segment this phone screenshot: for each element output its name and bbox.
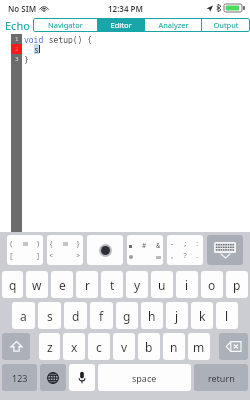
button[interactable]: ( . ) [ ] — [7, 235, 43, 265]
staticText: 3 — [15, 55, 19, 63]
button[interactable]: u — [151, 271, 173, 298]
button[interactable]: r — [76, 271, 98, 298]
button[interactable]: z — [39, 333, 60, 360]
button[interactable]: t — [101, 271, 123, 298]
staticText: Navigator — [48, 20, 83, 30]
staticText: ( — [9, 239, 14, 249]
staticText: 2 — [15, 45, 19, 53]
staticText: a — [20, 308, 27, 324]
button[interactable]: o — [201, 271, 223, 298]
staticText: > — [76, 251, 81, 261]
button[interactable]: Delete — [219, 333, 248, 360]
staticText: , — [170, 251, 175, 261]
staticText: s — [47, 308, 53, 324]
button[interactable]: m — [188, 333, 210, 360]
button[interactable]: e — [51, 271, 73, 298]
staticText: 12:34 PM — [108, 3, 143, 14]
button[interactable]: l — [216, 302, 238, 329]
button[interactable]: d — [64, 302, 87, 329]
button[interactable]: g — [116, 302, 138, 329]
staticText: space — [132, 372, 157, 384]
button[interactable]: w — [26, 271, 48, 298]
staticText: No SIM — [8, 3, 37, 14]
button[interactable]: a — [12, 302, 35, 329]
button[interactable]: Symbols — [127, 235, 163, 265]
button[interactable]: Shift — [2, 333, 30, 360]
staticText: void — [24, 34, 44, 44]
staticText: p — [233, 277, 241, 293]
staticText: ; — [183, 239, 188, 249]
staticText: Editor — [110, 20, 132, 30]
button[interactable]: space — [98, 364, 191, 391]
staticText: m — [193, 339, 205, 355]
staticText: r — [85, 277, 90, 293]
staticText: return — [208, 372, 235, 384]
button[interactable]: return — [194, 364, 248, 391]
button[interactable]: f — [90, 302, 113, 329]
staticText: d — [72, 308, 80, 324]
button[interactable]: n — [163, 333, 185, 360]
staticText: w — [32, 277, 42, 293]
staticText: & — [156, 241, 161, 251]
staticText: [ — [9, 251, 14, 261]
staticText: f — [99, 308, 104, 324]
staticText: < — [49, 251, 54, 261]
staticText: c — [96, 339, 102, 355]
button[interactable]: Echo — [0, 16, 33, 34]
staticText: h — [148, 308, 156, 324]
staticText: e — [59, 277, 66, 293]
staticText: # — [142, 241, 147, 251]
button[interactable]: Output — [202, 18, 250, 32]
staticText: ? — [183, 251, 188, 261]
button[interactable]: c — [88, 333, 110, 360]
staticText: Echo — [5, 18, 30, 32]
staticText: x — [71, 339, 78, 355]
button[interactable]: Dictate — [69, 364, 95, 391]
staticText: v — [121, 339, 128, 355]
button[interactable]: Next keyboard — [40, 364, 66, 391]
button[interactable]: Punctuation — [167, 235, 203, 265]
staticText: } — [24, 54, 29, 64]
staticText: t — [110, 277, 115, 293]
staticText: u — [158, 277, 166, 293]
button[interactable]: h — [141, 302, 163, 329]
staticText: setup() { — [44, 34, 92, 44]
button[interactable]: q — [2, 271, 23, 298]
staticText: l — [225, 308, 229, 324]
button[interactable]: s — [38, 302, 61, 329]
staticText: s — [34, 44, 39, 54]
button[interactable]: j — [166, 302, 188, 329]
staticText: 123 — [12, 372, 28, 384]
staticText: ] — [36, 251, 41, 261]
button[interactable]: y — [126, 271, 148, 298]
staticText: - — [170, 239, 175, 249]
staticText: g — [123, 308, 131, 324]
staticText: } — [76, 239, 81, 249]
staticText: y — [134, 277, 141, 293]
button[interactable]: Hide keyboard — [207, 235, 243, 265]
button[interactable]: p — [226, 271, 248, 298]
staticText: . — [195, 251, 200, 261]
button[interactable]: Record — [87, 235, 123, 265]
staticText: { — [49, 239, 54, 249]
button[interactable]: v — [113, 333, 135, 360]
staticText: 1 — [15, 35, 19, 43]
button[interactable]: x — [63, 333, 85, 360]
staticText: q — [9, 277, 17, 293]
button[interactable]: k — [191, 302, 213, 329]
button[interactable]: Analyzer — [145, 18, 201, 32]
staticText: ) — [36, 239, 41, 249]
staticText: k — [199, 308, 206, 324]
staticText: n — [170, 339, 178, 355]
staticText: b — [145, 339, 153, 355]
button[interactable]: Editor — [98, 18, 144, 32]
staticText: : — [195, 239, 200, 249]
button[interactable]: { , } < > — [47, 235, 83, 265]
button[interactable]: 123 — [2, 364, 37, 391]
staticText: i — [185, 277, 189, 293]
button[interactable]: b — [138, 333, 160, 360]
button[interactable]: i — [176, 271, 198, 298]
button[interactable]: Navigator — [33, 18, 97, 32]
